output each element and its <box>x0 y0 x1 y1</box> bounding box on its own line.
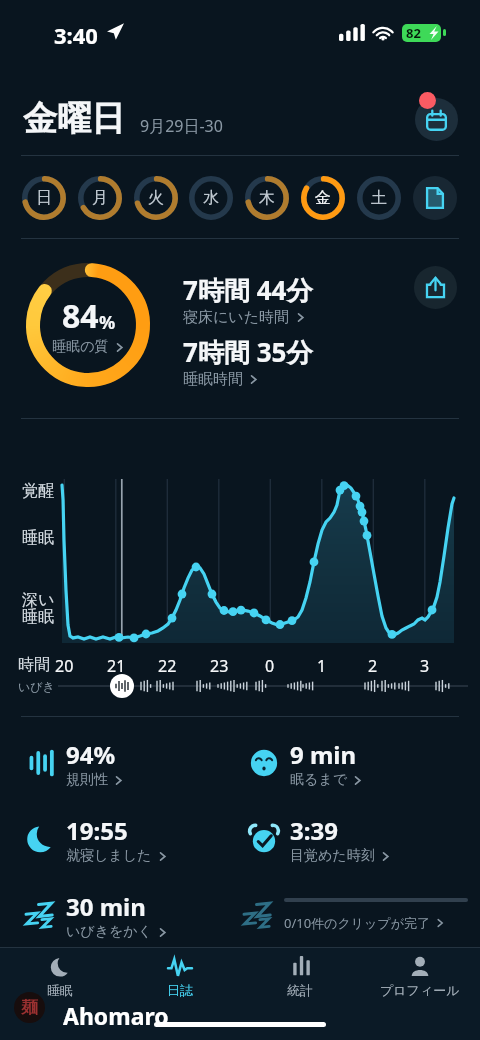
staticText: 睡眠の質 <box>52 338 109 356</box>
staticText: 寝床にいた時間 <box>183 308 290 327</box>
staticText: 19:55 <box>66 814 128 847</box>
staticText: 就寝しました <box>66 847 152 865</box>
staticText: 9 min <box>290 738 357 771</box>
staticText: 深い <box>22 590 55 610</box>
button[interactable]: 水 <box>189 176 233 220</box>
staticText: 9月29日-30 <box>140 115 223 137</box>
button[interactable]: 7時間 35分 <box>183 334 313 389</box>
staticText: % <box>99 310 116 335</box>
staticText: 金 <box>315 188 331 208</box>
button[interactable]: 30 min <box>22 889 236 941</box>
button[interactable]: 7時間 44分 <box>183 272 313 327</box>
staticText: 3:39 <box>290 814 338 847</box>
staticText: 21 <box>107 655 126 677</box>
button[interactable]: Calendar <box>415 98 458 141</box>
staticText: 2 <box>368 655 378 677</box>
staticText: 20 <box>55 655 74 677</box>
button[interactable]: 日誌 <box>120 948 240 1040</box>
staticText: 0/10件のクリップが完了 <box>284 914 430 932</box>
button[interactable]: Share <box>414 266 457 309</box>
button[interactable]: 土 <box>357 176 401 220</box>
staticText: 睡眠時間 <box>183 370 243 389</box>
staticText: 94% <box>66 738 116 771</box>
staticText: 火 <box>148 188 164 208</box>
staticText: 3:40 <box>54 20 98 50</box>
button[interactable]: プロフィール <box>360 948 480 1040</box>
button[interactable]: 19:55 <box>22 813 236 865</box>
staticText: 23 <box>210 655 229 677</box>
staticText: 覚醒 <box>22 481 54 501</box>
button[interactable]: 3:39 <box>246 813 460 865</box>
button[interactable]: 火 <box>134 176 178 220</box>
staticText: 月 <box>92 188 108 208</box>
staticText: プロフィール <box>380 982 460 998</box>
staticText: 1 <box>317 655 327 677</box>
staticText: 土 <box>371 188 387 208</box>
staticText: 日 <box>36 188 52 208</box>
staticText: 睡眠 <box>22 607 54 627</box>
staticText: 0 <box>265 655 275 677</box>
staticText: 水 <box>203 188 219 208</box>
staticText: Ahomaro <box>63 1000 169 1031</box>
staticText: 7時間 44分 <box>183 272 313 308</box>
staticText: 規則性 <box>66 771 108 789</box>
staticText: 統計 <box>287 982 313 998</box>
staticText: 84 <box>62 294 99 338</box>
button[interactable]: 統計 <box>240 948 360 1040</box>
button[interactable]: 日 <box>22 176 66 220</box>
staticText: 22 <box>158 655 177 677</box>
button[interactable]: 月 <box>78 176 122 220</box>
button[interactable]: 金 <box>301 176 345 220</box>
staticText: 時間 <box>18 655 50 675</box>
button[interactable]: Notes <box>413 176 457 220</box>
staticText: 30 min <box>66 890 146 923</box>
button[interactable]: 0/10件のクリップが完了 <box>240 889 470 941</box>
staticText: 金曜日 <box>23 97 125 140</box>
staticText: 7時間 35分 <box>183 334 313 370</box>
button[interactable]: 84 <box>26 263 150 387</box>
button[interactable]: 睡眠 <box>0 948 120 1040</box>
staticText: 睡眠 <box>22 528 54 548</box>
staticText: 眠るまで <box>290 771 347 789</box>
staticText: 麺 <box>21 997 38 1018</box>
staticText: 3 <box>420 655 430 677</box>
staticText: 82 <box>406 24 421 42</box>
staticText: 睡眠 <box>47 982 73 998</box>
button[interactable]: 木 <box>245 176 289 220</box>
staticText: 日誌 <box>167 982 193 998</box>
staticText: 目覚めた時刻 <box>290 847 375 865</box>
staticText: いびきをかく <box>66 923 152 941</box>
staticText: 木 <box>259 188 275 208</box>
button[interactable]: 9 min <box>246 737 460 789</box>
button[interactable]: 94% <box>22 737 236 789</box>
staticText: いびき <box>18 679 55 694</box>
